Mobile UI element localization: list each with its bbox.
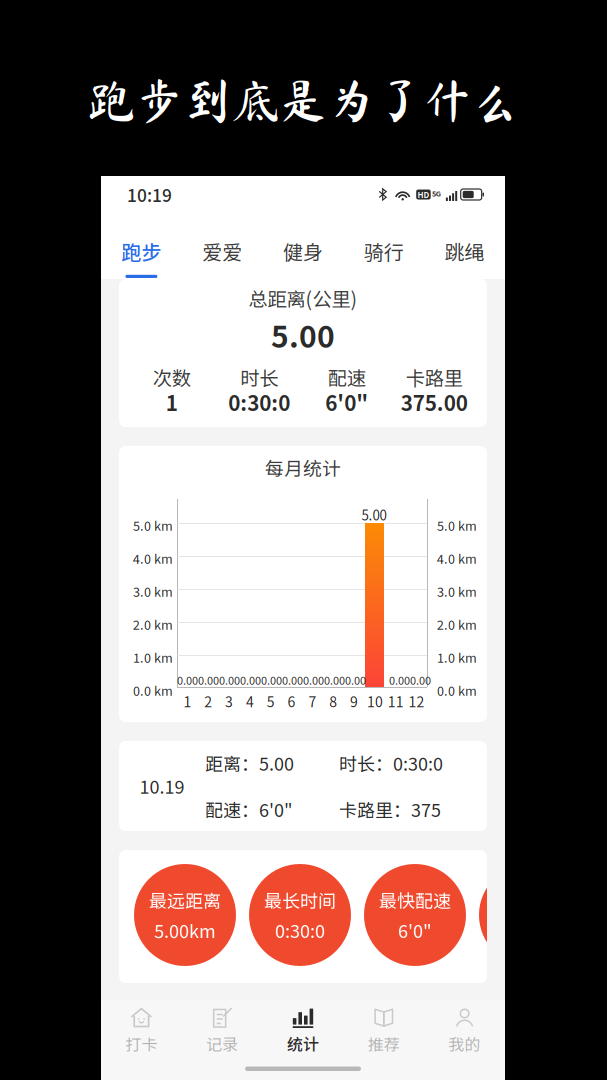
- staticText: 9: [350, 691, 358, 711]
- staticText: 1: [166, 387, 178, 417]
- staticText: 3: [225, 691, 233, 711]
- staticText: 6'0": [398, 917, 432, 943]
- button[interactable]: 统计: [263, 1007, 343, 1055]
- staticText: 0.0 km: [133, 681, 173, 699]
- button[interactable]: 记录: [182, 1007, 263, 1055]
- staticText: 0:30:0: [275, 917, 325, 943]
- staticText: HD: [417, 189, 429, 200]
- staticText: 最多卡路: [494, 887, 566, 913]
- staticText: 骑行: [364, 237, 404, 266]
- staticText: 打卡: [125, 1032, 157, 1055]
- button[interactable]: 最多卡路: [479, 864, 581, 966]
- staticText: 配速: [328, 363, 366, 391]
- staticText: 时长: [240, 363, 278, 391]
- button[interactable]: 跳绳: [424, 213, 505, 279]
- staticText: 2: [204, 691, 212, 711]
- staticText: 11: [388, 691, 404, 711]
- staticText: 4.0 km: [437, 549, 477, 567]
- staticText: 1.0 km: [437, 648, 477, 666]
- staticText: 5.00: [271, 313, 335, 356]
- staticText: 8: [329, 691, 337, 711]
- staticText: 4.0 km: [133, 549, 173, 567]
- staticText: 0.000.00: [389, 672, 431, 688]
- button[interactable]: 跑步: [101, 213, 182, 279]
- staticText: 12: [409, 691, 425, 711]
- staticText: 2.0 km: [437, 615, 477, 633]
- staticText: 爱爱: [202, 237, 242, 266]
- staticText: 5.00: [361, 505, 386, 524]
- staticText: 记录: [206, 1032, 238, 1055]
- staticText: 375.00: [401, 387, 468, 417]
- staticText: 0.000.000.000.000.000.000.000.000.00: [177, 672, 366, 688]
- staticText: 总距离(公里): [248, 284, 357, 312]
- staticText: 1: [183, 691, 191, 711]
- button[interactable]: 最长时间: [249, 864, 351, 966]
- button[interactable]: 爱爱: [182, 213, 263, 279]
- staticText: 推荐: [368, 1032, 400, 1055]
- staticText: 6'0": [325, 387, 368, 417]
- button[interactable]: 健身: [263, 213, 343, 279]
- staticText: 跳绳: [445, 237, 485, 266]
- staticText: 5.0 km: [133, 516, 173, 534]
- staticText: 每月统计: [265, 454, 341, 481]
- button[interactable]: 最快配速: [364, 864, 466, 966]
- button[interactable]: 我的: [424, 1007, 505, 1055]
- staticText: 4: [246, 691, 254, 711]
- button[interactable]: 骑行: [343, 213, 424, 279]
- staticText: 10.19: [139, 773, 184, 799]
- staticText: 距离：5.00: [205, 750, 294, 776]
- staticText: 跑步: [121, 237, 161, 266]
- staticText: 健身: [283, 237, 323, 266]
- staticText: 配速：6'0": [205, 796, 293, 822]
- staticText: 5: [267, 691, 275, 711]
- button[interactable]: 推荐: [343, 1007, 424, 1055]
- button[interactable]: 最远距离: [134, 864, 236, 966]
- staticText: 2.0 km: [133, 615, 173, 633]
- staticText: 3.0 km: [133, 582, 173, 600]
- staticText: 10: [367, 691, 383, 711]
- staticText: 最远距离: [149, 887, 221, 913]
- staticText: 5G: [432, 188, 441, 199]
- staticText: 0:30:0: [228, 387, 290, 417]
- staticText: 我的: [449, 1032, 481, 1055]
- staticText: 1.0 km: [133, 648, 173, 666]
- staticText: 6: [288, 691, 296, 711]
- staticText: 10:19: [127, 182, 172, 207]
- staticText: 时长：0:30:0: [339, 750, 443, 776]
- staticText: 3.0 km: [437, 582, 477, 600]
- staticText: 统计: [287, 1032, 319, 1055]
- button[interactable]: 打卡: [101, 1007, 182, 1055]
- staticText: 最快配速: [379, 887, 451, 913]
- staticText: 次数: [153, 363, 191, 391]
- staticText: 最长时间: [264, 887, 336, 913]
- staticText: 卡路里: [406, 363, 463, 391]
- staticText: 7: [308, 691, 316, 711]
- staticText: 5.0 km: [437, 516, 477, 534]
- staticText: 5.00km: [154, 917, 216, 943]
- staticText: 卡路里：375: [339, 796, 441, 822]
- staticText: 0.0 km: [437, 681, 477, 699]
- staticText: 跑步到底是为了什么: [87, 76, 519, 124]
